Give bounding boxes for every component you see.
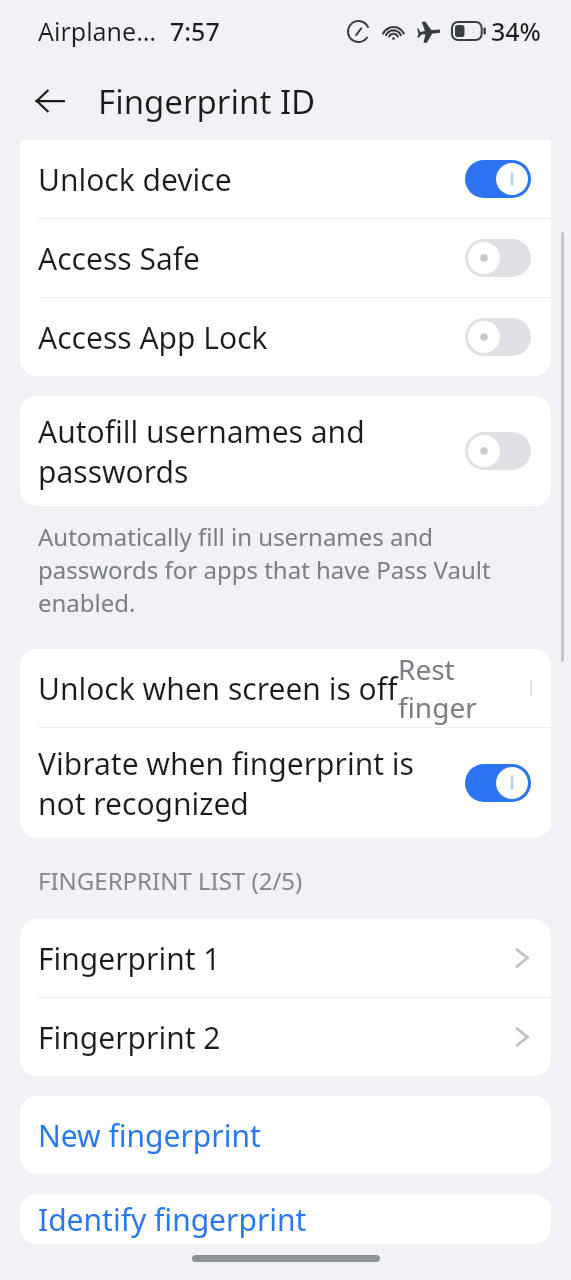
button[interactable]: Off <box>465 432 531 470</box>
button[interactable]: Unlock device <box>20 140 551 218</box>
staticText: 7:57 <box>170 14 220 48</box>
staticText: New fingerprint <box>38 1115 261 1156</box>
staticText: FINGERPRINT LIST (2/5) <box>38 864 303 897</box>
staticText: Vibrate when fingerprint is not recogniz… <box>38 743 447 824</box>
button[interactable]: New fingerprint <box>20 1096 551 1174</box>
button[interactable]: Access App Lock <box>20 298 551 376</box>
button[interactable]: Autofill usernames and passwords <box>20 396 551 506</box>
button[interactable]: Fingerprint 2 <box>20 998 551 1076</box>
button[interactable]: Unlock when screen is off <box>20 649 551 727</box>
button[interactable]: On <box>465 764 531 802</box>
staticText: Fingerprint 1 <box>38 938 221 979</box>
staticText: Access Safe <box>38 238 200 279</box>
button[interactable]: Off <box>465 239 531 277</box>
button[interactable]: Vibrate when fingerprint is not recogniz… <box>20 728 551 838</box>
staticText: Rest finger <box>398 650 531 726</box>
staticText: Fingerprint 2 <box>38 1017 221 1058</box>
button[interactable]: Identify fingerprint <box>20 1194 551 1244</box>
staticText: Automatically fill in usernames and pass… <box>38 520 533 619</box>
button[interactable]: Back <box>22 73 78 129</box>
staticText: Fingerprint ID <box>98 79 316 124</box>
button[interactable]: Fingerprint 1 <box>20 919 551 997</box>
staticText: Access App Lock <box>38 317 268 358</box>
staticText: Airplane… <box>38 14 156 48</box>
staticText: 34% <box>491 14 541 48</box>
staticText: Identify fingerprint <box>38 1199 307 1240</box>
staticText: Autofill usernames and passwords <box>38 411 447 492</box>
staticText: Unlock device <box>38 159 232 200</box>
staticText: Unlock when screen is off <box>38 668 398 709</box>
button[interactable]: On <box>465 160 531 198</box>
button[interactable]: Off <box>465 318 531 356</box>
button[interactable]: Access Safe <box>20 219 551 297</box>
